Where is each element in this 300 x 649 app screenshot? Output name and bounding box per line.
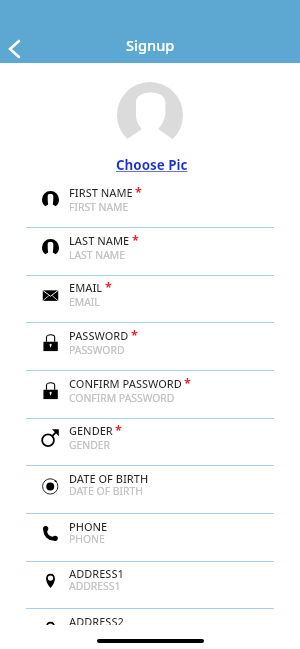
staticText: EMAIL <box>69 280 103 295</box>
staticText: PHONE <box>69 519 108 534</box>
button[interactable]: EMAIL <box>0 275 300 323</box>
staticText: ADDRESS2 <box>69 627 121 641</box>
staticText: ADDRESS1 <box>69 566 124 581</box>
staticText: LAST NAME <box>69 248 126 262</box>
staticText: PASSWORD <box>69 343 125 357</box>
staticText: DATE OF BIRTH <box>69 484 143 498</box>
staticText: CONFIRM PASSWORD <box>69 376 182 391</box>
staticText: FIRST NAME <box>69 185 133 200</box>
button[interactable]: Back <box>0 28 30 68</box>
staticText: EMAIL <box>69 295 100 309</box>
staticText: GENDER <box>69 423 113 438</box>
button[interactable]: PASSWORD <box>0 323 300 371</box>
staticText: CONFIRM PASSWORD <box>69 391 175 405</box>
button[interactable]: CONFIRM PASSWORD <box>0 371 300 419</box>
button[interactable]: PHONE <box>0 514 300 562</box>
staticText: * <box>105 279 112 296</box>
button[interactable]: Choose Pic <box>116 156 188 174</box>
staticText: DATE OF BIRTH <box>69 471 149 486</box>
button[interactable]: ADDRESS1 <box>0 561 300 609</box>
staticText: GENDER <box>69 438 111 452</box>
staticText: * <box>131 327 138 344</box>
button[interactable]: ADDRESS2 <box>0 609 300 649</box>
button[interactable]: LAST NAME <box>0 228 300 276</box>
staticText: PASSWORD <box>69 328 129 343</box>
staticText: * <box>132 232 139 249</box>
button[interactable]: Profile picture <box>117 82 183 148</box>
button[interactable]: GENDER <box>0 418 300 466</box>
button[interactable]: FIRST NAME <box>0 180 300 228</box>
staticText: PHONE <box>69 532 105 546</box>
staticText: LAST NAME <box>69 233 130 248</box>
staticText: ADDRESS1 <box>69 579 121 593</box>
staticText: ADDRESS2 <box>69 614 124 629</box>
staticText: FIRST NAME <box>69 200 129 214</box>
staticText: * <box>115 422 122 439</box>
button[interactable]: DATE OF BIRTH <box>0 466 300 514</box>
staticText: Signup <box>126 35 175 55</box>
staticText: * <box>184 375 191 392</box>
staticText: * <box>135 184 142 201</box>
